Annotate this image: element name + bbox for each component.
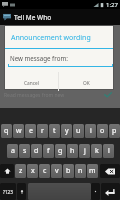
staticText: s [23,146,27,156]
staticText: a [11,146,15,156]
button[interactable]: q [1,124,12,138]
staticText: r [41,126,44,136]
staticText: f [47,146,50,156]
button[interactable]: u [73,124,84,138]
button[interactable]: Cancel [5,72,58,91]
button[interactable]: Enter [101,183,120,200]
staticText: y [65,126,69,136]
button[interactable]: h [67,144,78,158]
staticText: e [29,126,33,136]
staticText: m [89,166,96,176]
staticText: OK [83,80,90,87]
staticText: ?123 [3,189,13,195]
button[interactable]: OK [59,72,113,91]
button[interactable]: w [13,124,24,138]
staticText: g [58,146,63,156]
staticText: k [95,146,99,156]
staticText: b [66,166,71,176]
staticText: v [55,166,59,176]
button[interactable]: p [109,124,120,138]
staticText: o [100,126,105,136]
button[interactable]: a [7,144,18,158]
staticText: i [90,126,92,136]
button[interactable]: t [49,124,60,138]
staticText: Tell Me Who [14,13,52,22]
button[interactable]: ?123 [0,183,16,200]
button[interactable]: c [39,164,50,178]
staticText: u [76,126,81,136]
button[interactable]: Voice input [17,183,26,200]
staticText: 1:27 [106,1,118,9]
button[interactable]: i [85,124,96,138]
staticText: t [53,126,56,136]
staticText: New message from: [10,54,68,62]
button[interactable]: Read messages from new [4,89,112,101]
button[interactable]: Shift [0,164,14,178]
button[interactable]: Space [28,183,91,200]
button[interactable]: z [15,164,26,178]
button[interactable]: o [97,124,108,138]
button[interactable]: s [19,144,30,158]
button[interactable]: b [63,164,74,178]
button[interactable]: v [51,164,62,178]
button[interactable]: Period [91,183,100,200]
staticText: z [19,166,23,176]
staticText: x [31,166,35,176]
button[interactable]: x [27,164,38,178]
staticText: p [112,126,117,136]
button[interactable]: f [43,144,54,158]
staticText: w [16,126,22,136]
staticText: d [34,146,39,156]
button[interactable]: d [31,144,42,158]
staticText: Announcement wording [11,33,91,43]
button[interactable]: m [87,164,98,178]
button[interactable]: Backspace [100,164,120,178]
button[interactable]: l [103,144,114,158]
staticText: n [78,166,83,176]
button[interactable]: r [37,124,48,138]
staticText: h [70,146,75,156]
button[interactable]: e [25,124,36,138]
staticText: j [84,146,86,156]
staticText: l [108,146,110,156]
button[interactable]: g [55,144,66,158]
staticText: c [43,166,47,176]
button[interactable]: y [61,124,72,138]
button[interactable]: j [79,144,90,158]
staticText: Cancel [24,80,39,87]
button[interactable]: Tell Me Who [0,9,120,25]
staticText: Read messages from new [4,92,65,99]
staticText: q [4,126,9,136]
button[interactable]: n [75,164,86,178]
button[interactable]: k [91,144,102,158]
